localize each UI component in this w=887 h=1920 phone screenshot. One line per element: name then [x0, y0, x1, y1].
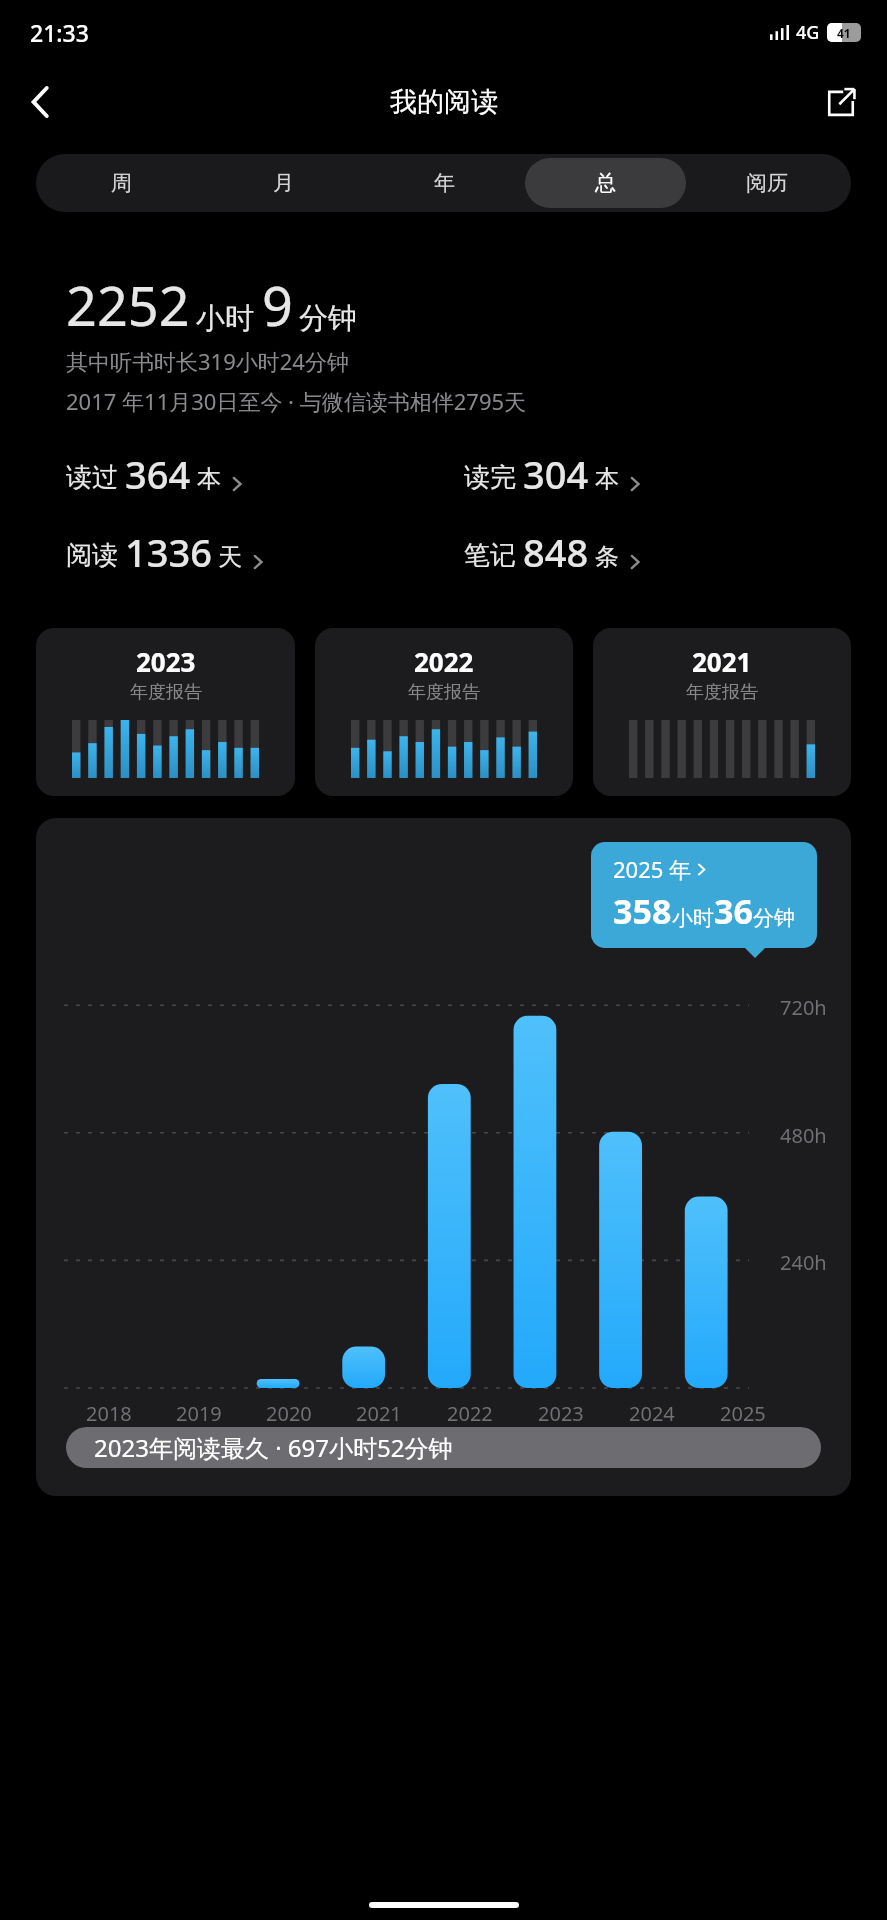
staticText: 720h — [780, 994, 827, 1021]
staticText: 年 — [434, 170, 455, 196]
staticText: 9 — [262, 268, 293, 342]
button[interactable]: 2023 — [36, 628, 295, 796]
staticText: 364 — [125, 448, 191, 500]
staticText: 阅历 — [746, 170, 788, 196]
staticText: 笔记 — [464, 539, 516, 572]
staticText: 41 — [837, 25, 851, 41]
button[interactable]: Share — [813, 74, 869, 130]
button[interactable]: 2021 — [593, 628, 851, 796]
staticText: 2020 — [266, 1400, 312, 1427]
button[interactable]: 读完 — [464, 442, 643, 506]
staticText: 总 — [595, 170, 616, 196]
staticText: 358 — [613, 888, 672, 934]
button[interactable]: 读过 — [66, 442, 245, 506]
staticText: 本 — [595, 464, 619, 494]
staticText: 21:33 — [30, 17, 89, 48]
staticText: 天 — [218, 542, 242, 572]
button[interactable]: 2023年阅读最久 · 697小时52分钟 — [66, 1427, 821, 1468]
button[interactable]: 阅历 — [686, 158, 847, 208]
button[interactable]: 月 — [202, 158, 364, 208]
staticText: 读完 — [464, 461, 516, 494]
button[interactable]: Back — [12, 74, 68, 130]
staticText: 2017 年11月30日至今 · 与微信读书相伴2795天 — [66, 386, 527, 416]
button[interactable]: 年 — [364, 158, 525, 208]
staticText: 年度报告 — [686, 681, 758, 704]
staticText: 2022 — [414, 644, 474, 679]
staticText: 小时 — [672, 905, 714, 931]
staticText: 2019 — [176, 1400, 222, 1427]
staticText: 2021 — [356, 1400, 402, 1427]
staticText: 年度报告 — [408, 681, 480, 704]
staticText: 2024 — [629, 1400, 675, 1427]
staticText: 其中听书时长319小时24分钟 — [66, 346, 349, 376]
button[interactable]: 2022 — [315, 628, 573, 796]
staticText: 2022 — [447, 1400, 493, 1427]
button[interactable]: 2025 年 — [591, 842, 817, 948]
staticText: 4G — [796, 20, 820, 45]
staticText: 条 — [595, 542, 619, 572]
staticText: 本 — [197, 464, 221, 494]
staticText: 2023 — [538, 1400, 584, 1427]
staticText: 848 — [523, 526, 589, 578]
staticText: 小时 — [196, 300, 254, 337]
staticText: 2023 — [136, 644, 196, 679]
button[interactable]: 阅读 — [66, 520, 266, 584]
staticText: 阅读 — [66, 539, 118, 572]
staticText: 读过 — [66, 461, 118, 494]
staticText: 304 — [523, 448, 589, 500]
button[interactable]: 笔记 — [464, 520, 643, 584]
staticText: 2025 年 — [613, 854, 692, 884]
staticText: 年度报告 — [130, 681, 202, 704]
staticText: 月 — [273, 170, 294, 196]
staticText: 2252 — [66, 268, 190, 342]
staticText: 我的阅读 — [390, 85, 498, 119]
staticText: 分钟 — [753, 905, 795, 931]
staticText: 36 — [714, 888, 753, 934]
button[interactable]: 总 — [525, 158, 686, 208]
staticText: 2023年阅读最久 · 697小时52分钟 — [94, 1431, 453, 1464]
button[interactable]: 周 — [40, 158, 202, 208]
staticText: 480h — [780, 1122, 827, 1149]
staticText: 分钟 — [299, 300, 357, 337]
staticText: 240h — [780, 1249, 827, 1276]
staticText: 周 — [111, 170, 132, 196]
staticText: 2018 — [86, 1400, 132, 1427]
staticText: 1336 — [125, 526, 212, 578]
staticText: 2021 — [692, 644, 752, 679]
staticText: 2025 — [720, 1400, 766, 1427]
